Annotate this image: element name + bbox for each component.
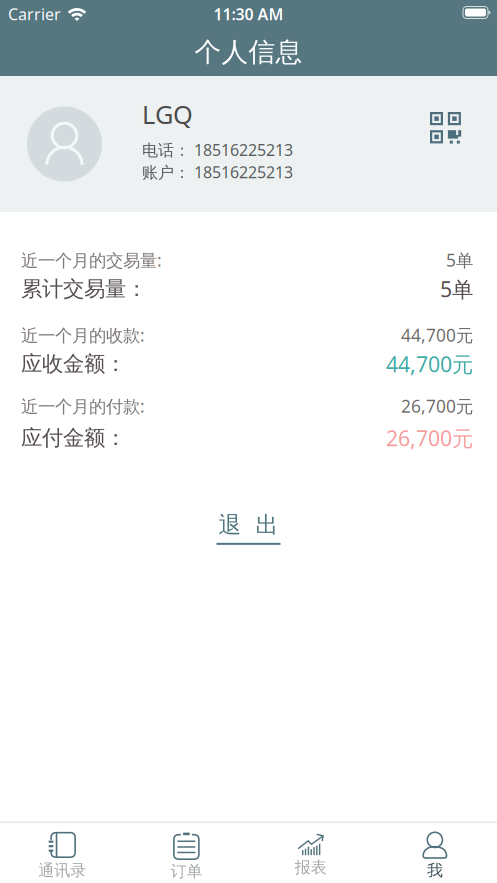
staticText: 近一个月的收款: bbox=[21, 323, 145, 346]
staticText: 电话： 18516225213 bbox=[142, 139, 293, 160]
staticText: Carrier bbox=[8, 3, 61, 25]
button[interactable]: 报表 bbox=[248, 823, 373, 881]
staticText: 5单 bbox=[440, 275, 473, 303]
button[interactable]: 我 bbox=[373, 823, 497, 881]
staticText: 我 bbox=[427, 861, 443, 880]
staticText: 累计交易量： bbox=[21, 276, 147, 302]
staticText: 11:30 AM bbox=[213, 3, 283, 25]
staticText: 应付金额： bbox=[21, 425, 126, 451]
staticText: 44,700元 bbox=[401, 323, 473, 346]
staticText: 账户： 18516225213 bbox=[142, 161, 293, 182]
staticText: 报表 bbox=[295, 858, 327, 877]
button[interactable]: 二维码 bbox=[430, 112, 462, 144]
staticText: 26,700元 bbox=[386, 424, 473, 452]
staticText: LGQ bbox=[142, 97, 193, 131]
staticText: 通讯录 bbox=[38, 861, 86, 880]
button[interactable]: 退 出 bbox=[216, 511, 280, 545]
staticText: 退 出 bbox=[218, 511, 278, 539]
staticText: 近一个月的付款: bbox=[21, 394, 145, 417]
staticText: 26,700元 bbox=[401, 394, 473, 417]
staticText: 44,700元 bbox=[386, 350, 473, 378]
staticText: 个人信息 bbox=[194, 36, 302, 68]
button[interactable]: 订单 bbox=[124, 823, 248, 881]
staticText: 订单 bbox=[170, 862, 202, 881]
staticText: 5单 bbox=[446, 248, 473, 271]
staticText: 应收金额： bbox=[21, 351, 126, 377]
staticText: 近一个月的交易量: bbox=[21, 248, 162, 271]
button[interactable]: 通讯录 bbox=[0, 823, 124, 881]
